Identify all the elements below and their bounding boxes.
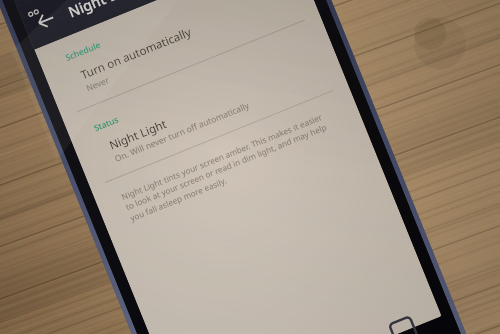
button[interactable]: Night Light settings on phone xyxy=(0,0,500,334)
